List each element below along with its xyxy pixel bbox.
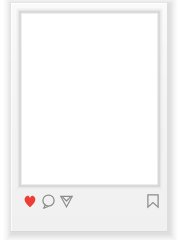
button[interactable]: Like [21,192,40,211]
button[interactable]: Share [57,192,76,211]
button[interactable]: Comment [39,192,58,211]
button[interactable]: Save [144,192,163,211]
